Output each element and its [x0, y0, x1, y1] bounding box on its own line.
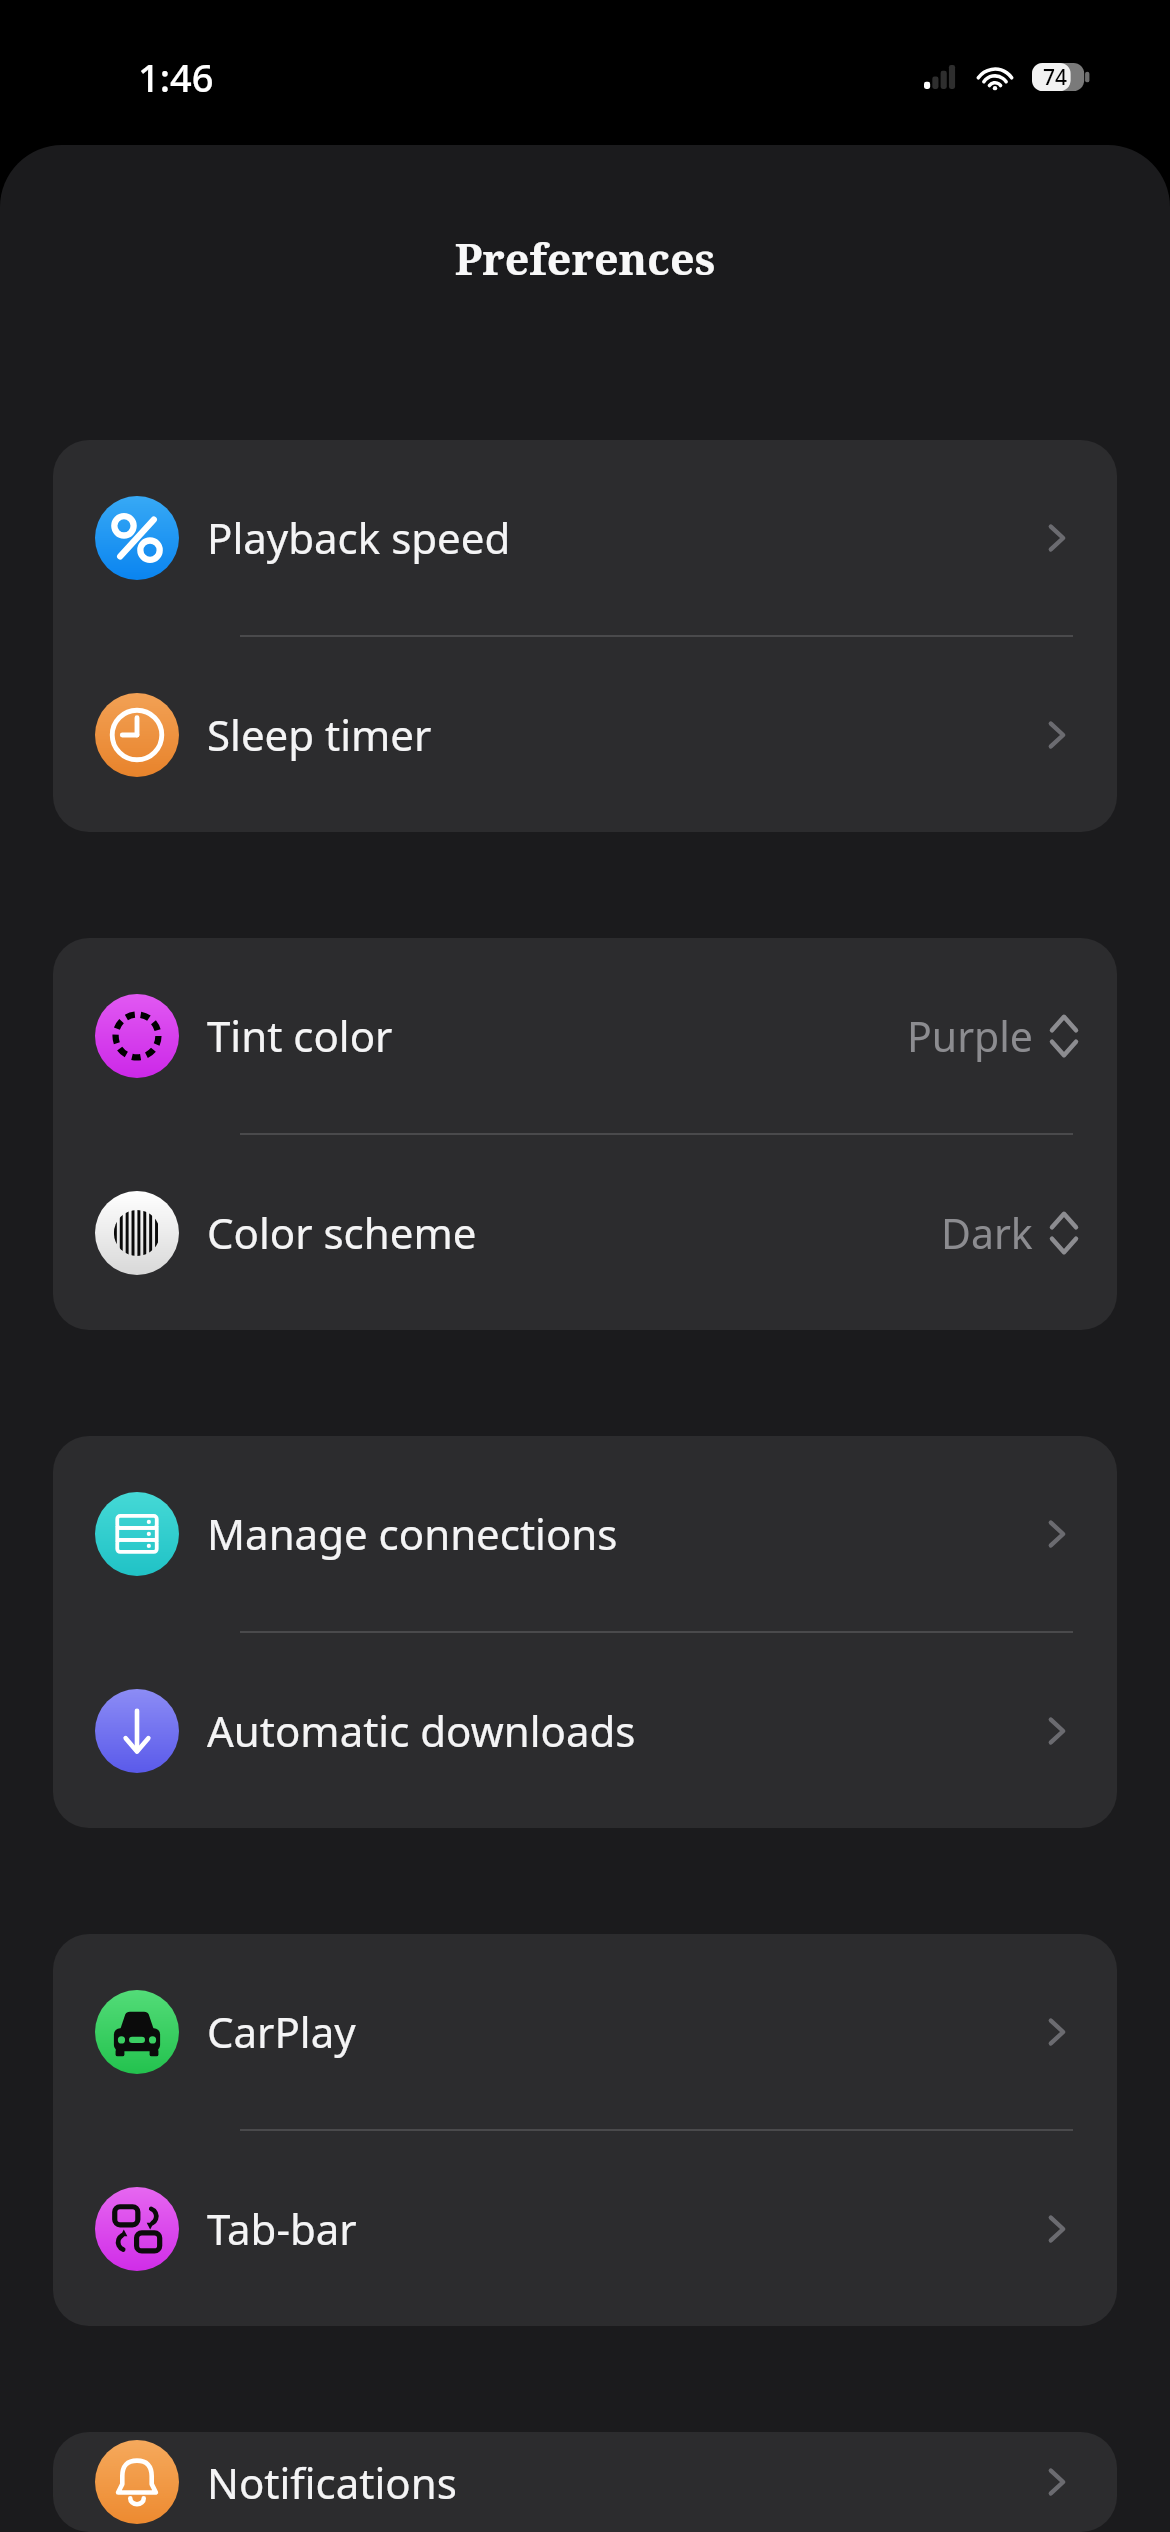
button[interactable]: Automatic downloads — [53, 1633, 1117, 1828]
staticText: Notifications — [207, 2454, 457, 2511]
button[interactable]: Manage connections — [53, 1436, 1117, 1631]
button[interactable]: Playback speed — [53, 440, 1117, 635]
staticText: 74 — [1043, 63, 1068, 91]
other: CarPlay — [95, 1990, 179, 2074]
staticText: Tint color — [207, 1007, 393, 1064]
other: Manage connections — [95, 1492, 179, 1576]
staticText: CarPlay — [207, 2003, 356, 2060]
other: Tint color — [95, 994, 179, 1078]
button[interactable]: Tab-bar — [53, 2131, 1117, 2326]
staticText: Automatic downloads — [207, 1702, 636, 1759]
other: Tab-bar — [95, 2187, 179, 2271]
staticText: 1:46 — [138, 51, 214, 103]
staticText: Dark — [941, 1205, 1033, 1261]
button[interactable]: Notifications — [53, 2432, 1117, 2532]
button[interactable]: Sleep timer — [53, 637, 1117, 832]
staticText: Color scheme — [207, 1204, 477, 1261]
button[interactable]: Color scheme — [53, 1135, 1117, 1330]
button[interactable]: CarPlay — [53, 1934, 1117, 2129]
staticText: Playback speed — [207, 509, 511, 566]
staticText: Purple — [907, 1008, 1033, 1064]
other: Playback speed — [95, 496, 179, 580]
staticText: Manage connections — [207, 1505, 618, 1562]
other: Color scheme — [95, 1191, 179, 1275]
staticText: Preferences — [0, 229, 1170, 288]
button[interactable]: Tint color — [53, 938, 1117, 1133]
staticText: Sleep timer — [207, 706, 432, 763]
staticText: Tab-bar — [207, 2200, 357, 2257]
other: Sleep timer — [95, 693, 179, 777]
other: Notifications — [95, 2440, 179, 2524]
other: Automatic downloads — [95, 1689, 179, 1773]
